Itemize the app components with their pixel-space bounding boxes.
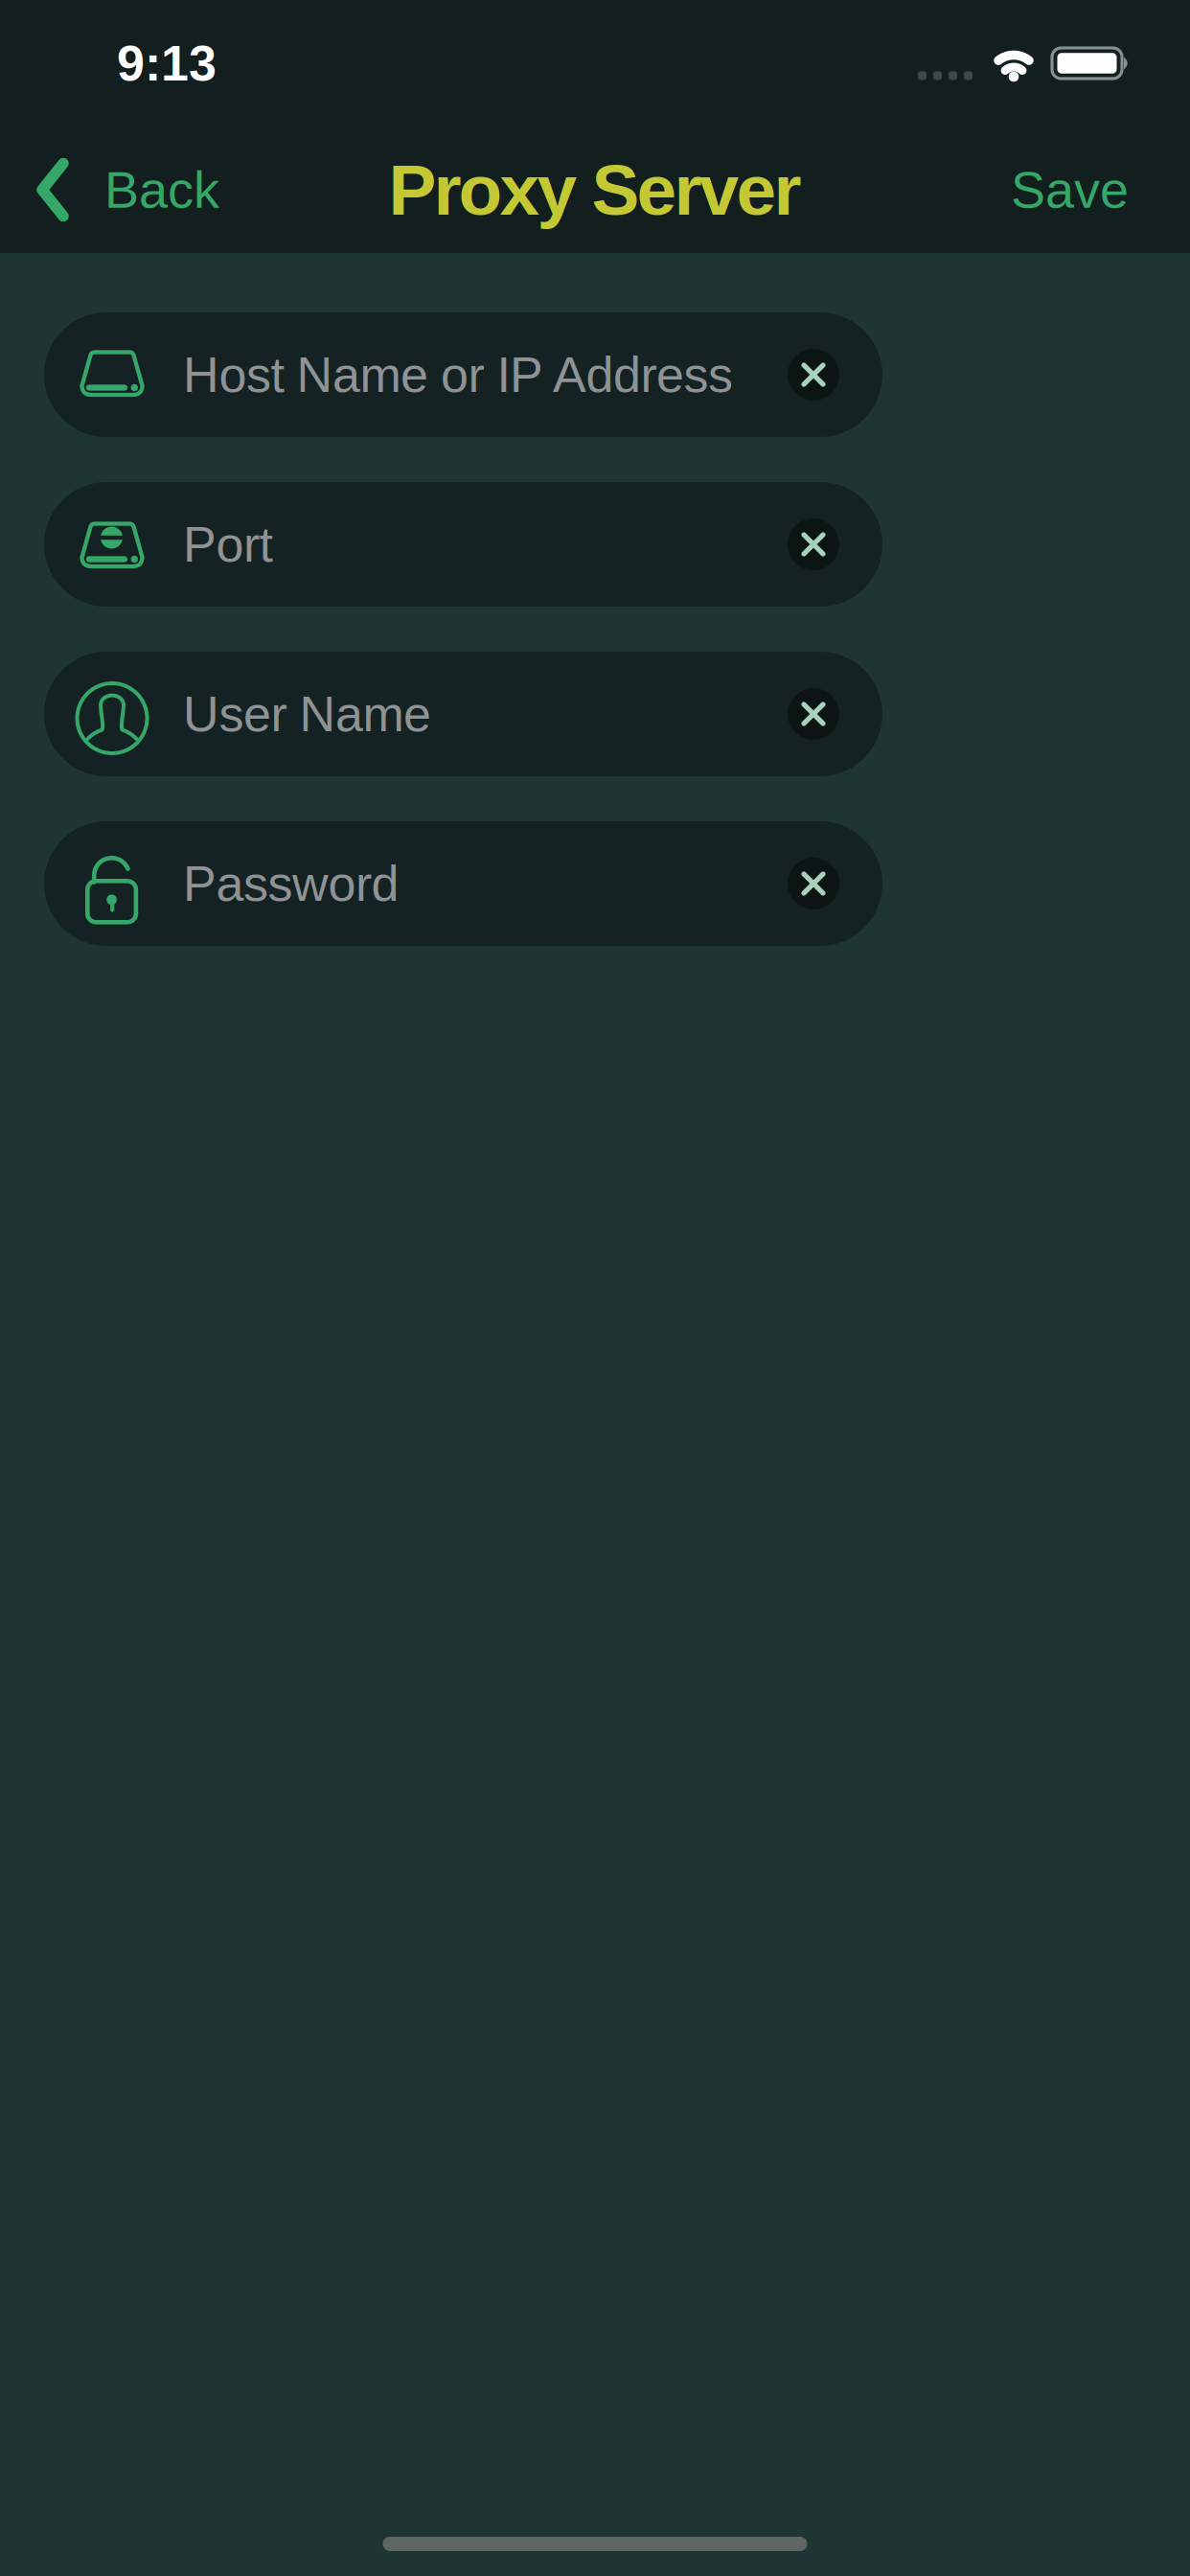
button[interactable] (788, 518, 839, 570)
button[interactable]: Port (44, 482, 882, 607)
staticText: Save (1011, 161, 1129, 219)
button[interactable]: Save (1011, 161, 1190, 219)
staticText: Host Name or IP Address (183, 347, 733, 403)
staticText: Back (104, 161, 219, 219)
staticText: Proxy Server (389, 150, 801, 230)
staticText: Port (183, 517, 273, 572)
button[interactable]: Password (44, 821, 882, 946)
button[interactable] (788, 688, 839, 740)
staticText: 9:13 (117, 35, 217, 91)
staticText: Password (183, 856, 399, 911)
button[interactable] (788, 858, 839, 909)
button[interactable]: Back (0, 158, 219, 221)
button[interactable]: Host Name or IP Address (44, 312, 882, 437)
staticText: User Name (183, 686, 431, 742)
button[interactable] (788, 349, 839, 401)
button[interactable]: User Name (44, 652, 882, 776)
